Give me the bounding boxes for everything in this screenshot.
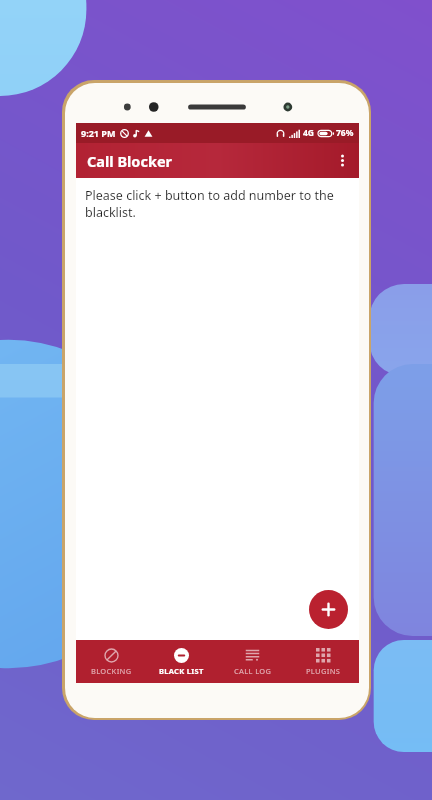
staticText: 76% — [336, 127, 354, 139]
staticText: BLOCKING — [91, 666, 132, 676]
staticText: Call Blocker — [87, 151, 173, 171]
button[interactable]: More options — [325, 143, 359, 178]
button[interactable]: BLOCKING — [76, 640, 146, 683]
button[interactable]: PLUGINS — [288, 640, 359, 683]
staticText: BLACK LIST — [159, 666, 204, 676]
staticText: 9:21 PM — [81, 127, 116, 139]
staticText: CALL LOG — [234, 666, 272, 676]
staticText: Please click + button to add number to t… — [85, 187, 345, 221]
staticText: PLUGINS — [306, 666, 341, 676]
button[interactable]: Add number — [309, 590, 348, 629]
button[interactable]: CALL LOG — [217, 640, 288, 683]
staticText: 4G — [303, 127, 315, 139]
button[interactable]: BLACK LIST — [146, 640, 217, 683]
